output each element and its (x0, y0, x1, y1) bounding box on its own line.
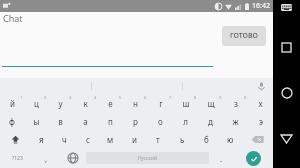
button[interactable]: ц (24, 94, 48, 112)
staticText: х (258, 98, 263, 109)
staticText: ж (232, 116, 239, 127)
staticText: т (156, 134, 160, 145)
button[interactable]: г (148, 94, 173, 112)
button[interactable]: ф (0, 112, 24, 130)
staticText: л (183, 116, 188, 127)
staticText: д (208, 116, 213, 127)
button[interactable]: Back (273, 124, 300, 154)
button[interactable]: у (48, 94, 73, 112)
staticText: п (108, 116, 113, 127)
staticText: р (133, 116, 138, 127)
button[interactable]: п (98, 112, 123, 130)
button[interactable]: ГОТОВО (222, 26, 266, 46)
staticText: Русский (138, 155, 158, 162)
button[interactable]: . (209, 148, 234, 168)
staticText: Chat (3, 12, 23, 24)
staticText: в (58, 116, 63, 127)
staticText: 9 (219, 95, 222, 100)
button[interactable]: и (122, 130, 146, 148)
button[interactable]: д (198, 112, 223, 130)
button[interactable]: щ (198, 94, 223, 112)
staticText: у (58, 98, 63, 109)
staticText: ы (33, 116, 40, 127)
staticText: ?123 (12, 155, 23, 162)
staticText: й (10, 98, 15, 109)
staticText: 7 (169, 95, 172, 100)
button[interactable]: з (223, 94, 248, 112)
staticText: н (133, 98, 138, 109)
staticText: 2 (44, 95, 47, 100)
staticText: , (45, 153, 48, 164)
button[interactable]: Shift (0, 130, 30, 148)
button[interactable]: Change keyboard language (59, 148, 86, 168)
staticText: щ (207, 98, 215, 109)
button[interactable]: ч (53, 130, 76, 148)
staticText: ш (182, 98, 190, 109)
button[interactable]: е (98, 94, 123, 112)
button[interactable]: т (146, 130, 170, 148)
button[interactable]: к (73, 94, 98, 112)
button[interactable]: ь (170, 130, 194, 148)
staticText: ч (62, 134, 67, 145)
button[interactable]: я (30, 130, 53, 148)
button[interactable]: ы (24, 112, 48, 130)
staticText: я (39, 134, 44, 145)
staticText: 6 (144, 95, 147, 100)
button[interactable]: б (194, 130, 218, 148)
staticText: 8 (194, 95, 197, 100)
staticText: к (83, 98, 88, 109)
button[interactable]: ?123 (0, 148, 34, 168)
staticText: и (132, 134, 137, 145)
staticText: а (83, 116, 88, 127)
button[interactable]: о (148, 112, 173, 130)
button[interactable]: ж (223, 112, 248, 130)
staticText: 0 (244, 95, 247, 100)
staticText: з (234, 98, 238, 109)
staticText: . (220, 153, 223, 164)
staticText: ь (180, 134, 185, 145)
button[interactable]: л (173, 112, 198, 130)
button[interactable]: Backspace (242, 130, 273, 148)
staticText: 16:42 (252, 1, 270, 11)
button[interactable]: , (34, 148, 59, 168)
button[interactable]: Keyboard (273, 0, 300, 14)
button[interactable]: й (0, 94, 24, 112)
staticText: ГОТОВО (230, 31, 258, 41)
button[interactable]: в (48, 112, 73, 130)
staticText: б (204, 134, 209, 145)
staticText: э (259, 116, 263, 127)
staticText: с (86, 134, 90, 145)
button[interactable] (183, 78, 273, 94)
button[interactable]: Enter (234, 148, 273, 168)
staticText: 5 (119, 95, 122, 100)
button[interactable]: р (123, 112, 148, 130)
staticText: о (158, 116, 163, 127)
button[interactable]: н (123, 94, 148, 112)
button[interactable]: а (73, 112, 98, 130)
button[interactable]: э (248, 112, 273, 130)
staticText: 3 (69, 95, 72, 100)
button[interactable]: Recent apps (273, 32, 300, 62)
button[interactable]: Русский (86, 152, 209, 164)
staticText: ю (227, 134, 234, 145)
staticText: ф (9, 116, 15, 127)
button[interactable]: ю (218, 130, 242, 148)
staticText: е (108, 98, 113, 109)
button[interactable]: Home (273, 78, 300, 108)
staticText: ц (34, 98, 39, 109)
staticText: г (159, 98, 163, 109)
button[interactable]: м (99, 130, 122, 148)
staticText: 1 (20, 95, 23, 100)
button[interactable]: Voice input (255, 80, 267, 92)
button[interactable]: ш (173, 94, 198, 112)
staticText: 4 (94, 95, 97, 100)
button[interactable]: с (76, 130, 99, 148)
button[interactable]: х (248, 94, 273, 112)
staticText: м (107, 134, 114, 145)
